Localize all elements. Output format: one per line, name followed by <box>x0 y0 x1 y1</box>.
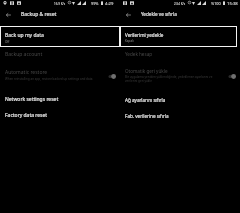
staticText: 2.54 K/s <box>174 2 186 6</box>
staticText: 99% <box>91 1 99 6</box>
staticText: Bir uygulama yeniden yüklendiğinde, yede… <box>125 75 225 83</box>
button[interactable]: Ağ ayarlarını sıfırla <box>125 92 240 107</box>
button[interactable]: Backup account <box>5 47 120 61</box>
button[interactable]: Navigate up <box>4 10 13 19</box>
staticText: 4:29 <box>105 1 114 7</box>
staticText: Network settings reset <box>5 96 59 103</box>
staticText: Off <box>5 40 10 44</box>
staticText: When reinstalling an app, restore backed… <box>5 77 93 81</box>
staticText: Ağ ayarlarını sıfırla <box>125 97 166 103</box>
button[interactable]: Factory data reset <box>5 108 120 123</box>
staticText: Fab. verilerine sıfırla <box>125 113 169 119</box>
staticText: Automatic restore <box>5 69 48 76</box>
button[interactable]: Navigate up <box>0 8 120 20</box>
staticText: %100 <box>211 1 221 6</box>
button[interactable]: Navigate up <box>120 8 240 20</box>
button[interactable]: Otomatik geri yükle <box>125 64 236 86</box>
staticText: 15:38 <box>227 1 238 7</box>
staticText: Back up my data <box>5 32 44 39</box>
button[interactable]: Yedek hesap <box>125 47 240 61</box>
staticText: Backup account <box>5 51 43 58</box>
staticText: Otomatik geri yükle <box>125 68 168 74</box>
button[interactable]: Navigate up <box>124 10 133 19</box>
staticText: Yedek hesap <box>125 51 153 57</box>
staticText: Verilerimi yedekle <box>125 32 164 38</box>
button[interactable]: Automatic restore <box>5 64 116 86</box>
button[interactable]: Network settings reset <box>5 92 120 107</box>
button[interactable]: Back up my data <box>0 26 120 47</box>
staticText: Yedekle ve sıfırla <box>141 11 177 17</box>
button[interactable]: Verilerimi yedekle <box>120 26 237 47</box>
staticText: Factory data reset <box>5 112 48 119</box>
staticText: Backup & reset <box>21 11 57 18</box>
button[interactable]: Fab. verilerine sıfırla <box>125 108 240 123</box>
staticText: Kapalı <box>125 39 134 43</box>
staticText: 16.9 K/s <box>54 2 66 6</box>
